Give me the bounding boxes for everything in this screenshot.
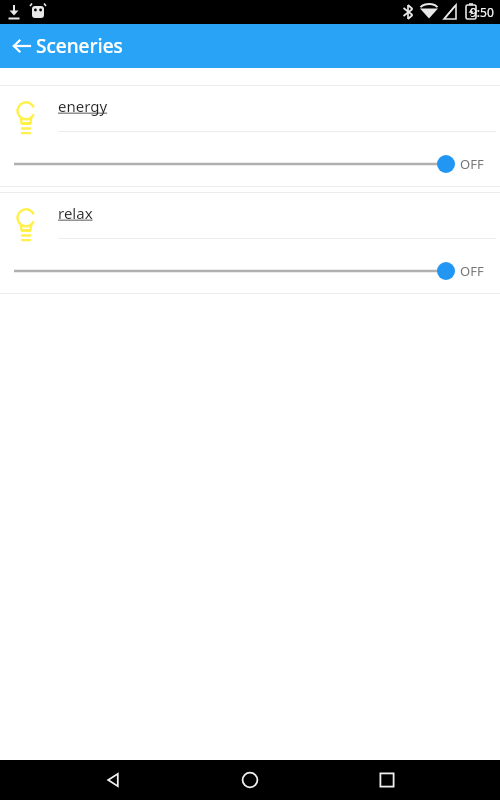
button[interactable]: Brightness slider xyxy=(14,253,456,289)
button[interactable]: Scene bulb xyxy=(0,193,500,293)
staticText: energy xyxy=(58,96,108,116)
staticText: OFF xyxy=(460,155,484,173)
staticText: Sceneries xyxy=(36,33,123,59)
button[interactable]: OFF xyxy=(460,262,500,280)
button[interactable]: Recents xyxy=(363,760,411,800)
staticText: relax xyxy=(58,203,93,223)
staticText: OFF xyxy=(460,262,484,280)
button[interactable]: Home xyxy=(226,760,274,800)
button[interactable]: Scene bulb xyxy=(0,86,500,186)
button[interactable]: Back xyxy=(4,28,40,64)
other: Scene bulb xyxy=(10,205,42,237)
other: Scene bulb xyxy=(10,98,42,130)
button[interactable]: Brightness slider xyxy=(14,146,456,182)
button[interactable]: Back xyxy=(89,760,137,800)
staticText: 9:50 xyxy=(470,4,494,20)
button[interactable]: OFF xyxy=(460,155,500,173)
